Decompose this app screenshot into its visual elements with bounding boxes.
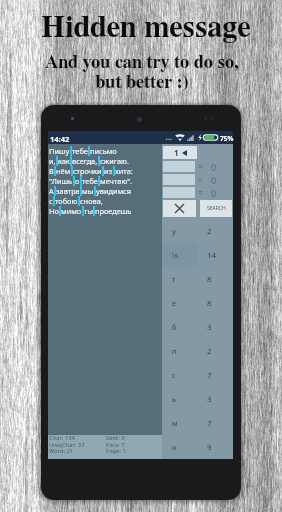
button[interactable]: SEARCH — [200, 200, 232, 217]
staticText: 9 — [207, 442, 212, 453]
staticText: Пишу — [49, 146, 70, 156]
staticText: с — [172, 370, 176, 380]
staticText: сжигаю. — [100, 156, 129, 166]
staticText: = — [198, 187, 203, 198]
staticText: 14:42 — [50, 134, 70, 144]
staticText: тебе — [82, 176, 98, 186]
staticText: письмо — [90, 146, 117, 156]
staticText: тобою — [55, 196, 78, 206]
staticText: е — [172, 298, 176, 308]
staticText: тебе — [72, 146, 88, 156]
staticText: 2 — [207, 226, 212, 237]
button[interactable]: о — [162, 435, 233, 459]
staticText: Char: 134 — [49, 434, 75, 442]
staticText: 75% — [220, 134, 234, 143]
staticText: о — [75, 176, 80, 186]
button[interactable]: б — [162, 315, 233, 339]
button[interactable]: 1 — [163, 146, 197, 159]
staticText: из — [104, 166, 113, 176]
staticText: 8 — [207, 274, 212, 285]
staticText: Page: 1 — [106, 447, 126, 455]
staticText: \s — [172, 250, 179, 260]
staticText: о — [172, 442, 177, 452]
staticText: как — [58, 156, 70, 166]
staticText: мимо — [61, 206, 82, 216]
staticText: у — [172, 226, 176, 236]
staticText: 7 — [207, 370, 212, 381]
button[interactable]: е — [162, 291, 233, 315]
staticText: завтра — [56, 186, 80, 196]
button[interactable]: м — [162, 411, 233, 435]
staticText: 3 — [207, 322, 212, 333]
staticText: Hidden message — [5, 13, 282, 43]
staticText: мы — [82, 186, 94, 196]
staticText: 0 — [211, 161, 217, 172]
staticText: б — [172, 322, 177, 332]
staticText: 7 — [207, 418, 212, 429]
staticText: хита: — [115, 166, 133, 176]
button[interactable]: у — [162, 219, 233, 243]
staticText: And you can try to do so, but better :) — [1, 53, 282, 91]
staticText: 0 — [211, 187, 217, 198]
button[interactable]: с — [162, 363, 233, 387]
staticText: мечтаю". — [100, 176, 133, 186]
staticText: ты — [84, 206, 93, 216]
staticText: = — [198, 161, 203, 172]
staticText: Sent: 3 — [106, 434, 125, 442]
staticText: = — [198, 174, 203, 185]
staticText: 14 — [207, 250, 216, 261]
staticText: Но — [49, 206, 59, 216]
staticText: проедешь — [95, 206, 132, 216]
staticText: 8 — [207, 298, 212, 309]
button[interactable]: ь — [162, 387, 233, 411]
staticText: увидимся — [96, 186, 131, 196]
button[interactable]: т — [162, 267, 233, 291]
staticText: SEARCH — [207, 205, 226, 212]
staticText: Word: 21 — [49, 447, 74, 455]
staticText: "Лишь — [49, 176, 73, 186]
staticText: ь — [172, 394, 176, 404]
staticText: В — [49, 166, 54, 176]
staticText: и, — [49, 156, 56, 166]
staticText: UniqChar: 37 — [49, 441, 85, 449]
staticText: с — [49, 196, 53, 206]
staticText: Para: 7 — [106, 441, 125, 449]
staticText: 3 — [207, 394, 212, 405]
staticText: нём — [56, 166, 71, 176]
staticText: 0 — [211, 174, 217, 185]
button[interactable]: Clear — [163, 200, 196, 217]
staticText: всегда, — [72, 156, 98, 166]
staticText: т — [172, 274, 176, 284]
staticText: снова, — [80, 196, 103, 206]
staticText: 1 — [174, 147, 179, 158]
button[interactable]: п — [162, 339, 233, 363]
staticText: п — [172, 346, 177, 356]
button[interactable]: \s — [162, 243, 233, 267]
staticText: А — [49, 186, 54, 196]
staticText: 2 — [207, 346, 212, 357]
staticText: м — [172, 418, 178, 428]
staticText: строчки — [73, 166, 102, 176]
